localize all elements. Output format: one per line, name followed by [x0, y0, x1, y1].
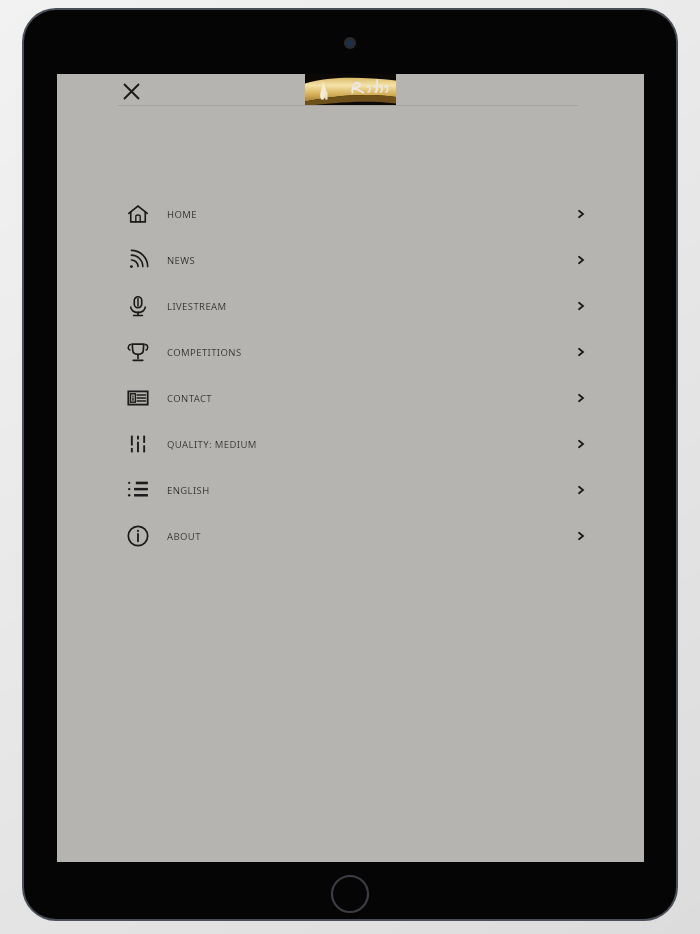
button[interactable]: HOME [57, 191, 644, 237]
staticText: NEWS [167, 254, 196, 267]
button[interactable]: COMPETITIONS [57, 329, 644, 375]
button[interactable]: NEWS [57, 237, 644, 283]
button[interactable]: ENGLISH [57, 467, 644, 513]
staticText: COMPETITIONS [167, 346, 242, 359]
button[interactable]: Radio logo [305, 74, 396, 106]
staticText: ENGLISH [167, 484, 210, 497]
button[interactable]: QUALITY: MEDIUM [57, 421, 644, 467]
button[interactable]: CONTACT [57, 375, 644, 421]
button[interactable]: ABOUT [57, 513, 644, 559]
button[interactable]: Close [118, 78, 144, 104]
staticText: HOME [167, 208, 197, 221]
staticText: LIVESTREAM [167, 300, 227, 313]
staticText: QUALITY: MEDIUM [167, 438, 257, 451]
staticText: CONTACT [167, 392, 213, 405]
staticText: ABOUT [167, 530, 201, 543]
button[interactable]: LIVESTREAM [57, 283, 644, 329]
